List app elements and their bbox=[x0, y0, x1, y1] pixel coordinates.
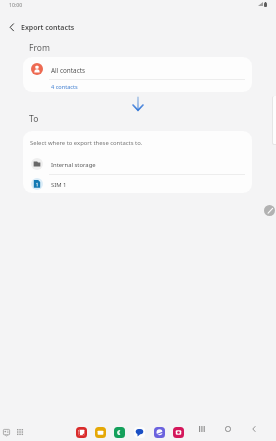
staticText: SIM 1 bbox=[51, 181, 67, 189]
button[interactable]: App bbox=[154, 427, 165, 438]
staticText: From bbox=[29, 42, 50, 54]
button[interactable]: Back bbox=[248, 423, 259, 434]
button[interactable]: App bbox=[134, 427, 145, 438]
button[interactable] bbox=[23, 174, 252, 193]
staticText: Export contacts bbox=[21, 23, 75, 33]
button[interactable] bbox=[23, 57, 252, 79]
button[interactable]: App bbox=[95, 427, 106, 438]
staticText: 4 contacts bbox=[51, 83, 78, 91]
staticText: Internal storage bbox=[51, 161, 96, 169]
button[interactable]: App bbox=[76, 427, 87, 438]
button[interactable]: App bbox=[173, 427, 184, 438]
button[interactable]: Recents bbox=[196, 423, 207, 434]
button[interactable] bbox=[23, 153, 252, 174]
staticText: 10:00 bbox=[9, 1, 23, 8]
button[interactable]: App bbox=[114, 427, 125, 438]
staticText: All contacts bbox=[51, 66, 86, 75]
button[interactable]: Edit bbox=[264, 205, 275, 216]
button[interactable]: Apps bbox=[17, 429, 23, 435]
button[interactable]: Back bbox=[2, 17, 21, 36]
staticText: To bbox=[29, 113, 39, 125]
button[interactable] bbox=[23, 80, 252, 92]
button[interactable]: Home bbox=[222, 423, 233, 434]
staticText: Select where to export these contacts to… bbox=[30, 139, 143, 147]
button[interactable]: Recent apps bbox=[3, 429, 10, 436]
